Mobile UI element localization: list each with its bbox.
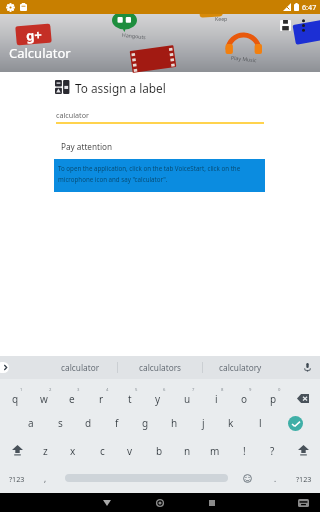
staticText: calculators (139, 362, 182, 373)
staticText: 7 (192, 387, 195, 393)
button[interactable]: p (259, 386, 287, 411)
staticText: calculator (56, 110, 90, 120)
staticText: 8 (221, 387, 224, 393)
staticText: i (215, 392, 218, 406)
staticText: c (100, 444, 105, 458)
button[interactable]: Enter (282, 411, 308, 436)
button[interactable]: calculator (44, 356, 117, 379)
staticText: 6:47 (302, 2, 317, 12)
staticText: 0 (278, 387, 281, 393)
staticText: calculator (61, 362, 100, 373)
button[interactable]: Recent apps (203, 493, 221, 512)
staticText: k (228, 416, 234, 430)
button[interactable]: d (74, 410, 102, 435)
button[interactable]: m (201, 438, 229, 463)
staticText: Pay attention (61, 141, 113, 152)
staticText: 4 (106, 387, 109, 393)
button[interactable]: Save (280, 20, 291, 31)
button[interactable]: Shift (289, 438, 317, 463)
button[interactable]: l (246, 410, 274, 435)
staticText: q (12, 392, 19, 406)
button[interactable]: c (88, 438, 116, 463)
staticText: y (155, 392, 161, 406)
staticText: w (40, 392, 48, 406)
button[interactable]: a (17, 410, 45, 435)
button[interactable]: Backspace (289, 386, 317, 411)
staticText: o (241, 392, 248, 406)
staticText: ?123 (296, 474, 312, 484)
button[interactable]: s (46, 410, 74, 435)
staticText: m (210, 444, 220, 458)
staticText: , (44, 473, 47, 484)
staticText: ! (243, 444, 246, 458)
staticText: 1 (20, 387, 23, 393)
staticText: g (142, 416, 149, 430)
staticText: . (274, 473, 277, 484)
staticText: Hangouts (122, 31, 146, 40)
button[interactable]: v (116, 438, 144, 463)
staticText: b (156, 444, 163, 458)
button[interactable]: Voice input (294, 356, 320, 379)
button[interactable]: f (103, 410, 131, 435)
button[interactable]: Emoji (234, 466, 260, 491)
staticText: e (69, 392, 75, 406)
staticText: f (115, 416, 119, 430)
staticText: To assign a label (75, 80, 166, 96)
staticText: h (171, 416, 178, 430)
button[interactable]: j (189, 410, 217, 435)
button[interactable]: b (145, 438, 173, 463)
button[interactable]: . (262, 466, 288, 491)
staticText: microphone icon and say "calculator". (58, 175, 168, 183)
staticText: ? (270, 444, 275, 458)
staticText: a (28, 416, 34, 430)
button[interactable]: ?123 (291, 466, 317, 491)
staticText: ?123 (9, 474, 25, 484)
button[interactable]: o (230, 386, 258, 411)
staticText: 3 (77, 387, 80, 393)
staticText: calculatory (219, 362, 262, 373)
button[interactable]: ! (230, 438, 258, 463)
button[interactable]: q (1, 386, 29, 411)
staticText: t (128, 392, 132, 406)
button[interactable]: , (32, 466, 58, 491)
staticText: 5 (135, 387, 138, 393)
staticText: d (85, 416, 92, 430)
button[interactable]: Expand suggestions (0, 362, 9, 373)
button[interactable]: r (87, 386, 115, 411)
staticText: g+ (25, 25, 43, 45)
staticText: Calculator (9, 44, 71, 62)
staticText: z (43, 444, 48, 458)
button[interactable]: t (116, 386, 144, 411)
button[interactable]: k (217, 410, 245, 435)
button[interactable]: g (131, 410, 159, 435)
button[interactable]: z (31, 438, 59, 463)
button[interactable]: i (202, 386, 230, 411)
staticText: s (58, 416, 63, 430)
button[interactable]: u (173, 386, 201, 411)
staticText: j (202, 416, 205, 430)
button[interactable]: Back (98, 493, 116, 512)
staticText: n (184, 444, 191, 458)
button[interactable]: calculatory (203, 356, 278, 379)
button[interactable]: y (144, 386, 172, 411)
staticText: Keep (215, 15, 228, 22)
staticText: u (184, 392, 191, 406)
button[interactable]: ?123 (4, 466, 30, 491)
button[interactable]: w (30, 386, 58, 411)
button[interactable]: More options (301, 19, 306, 32)
staticText: v (127, 444, 133, 458)
staticText: 6 (163, 387, 166, 393)
button[interactable]: Home (151, 493, 169, 512)
button[interactable]: x (59, 438, 87, 463)
button[interactable]: e (58, 386, 86, 411)
button[interactable]: Shift (3, 438, 31, 463)
staticText: r (99, 392, 104, 406)
button[interactable]: h (160, 410, 188, 435)
button[interactable]: n (173, 438, 201, 463)
staticText: l (259, 416, 262, 430)
button[interactable]: Switch keyboard (294, 493, 312, 512)
button[interactable]: ? (258, 438, 286, 463)
button[interactable]: calculators (118, 356, 202, 379)
staticText: Play Music (231, 54, 257, 63)
